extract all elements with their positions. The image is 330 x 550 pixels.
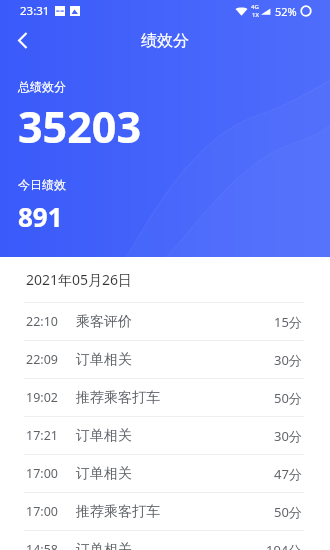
staticText: 50分 <box>274 389 302 407</box>
staticText: 订单相关 <box>76 541 132 550</box>
staticText: 17:00 <box>26 503 58 520</box>
staticText: 194分 <box>266 541 302 550</box>
staticText: 订单相关 <box>76 427 132 445</box>
staticText: 19:02 <box>26 389 58 406</box>
staticText: 47分 <box>274 465 302 483</box>
staticText: 17:21 <box>26 427 58 444</box>
staticText: 绩效分 <box>141 31 189 51</box>
staticText: 15分 <box>274 313 302 331</box>
button[interactable]: Back <box>0 22 44 58</box>
staticText: 23:31 <box>20 3 50 19</box>
staticText: 今日绩效 <box>18 177 66 192</box>
staticText: 22:10 <box>26 313 58 330</box>
staticText: 订单相关 <box>76 351 132 369</box>
staticText: 30分 <box>274 351 302 369</box>
staticText: 14:58 <box>26 541 58 550</box>
staticText: 22:09 <box>26 351 58 368</box>
staticText: 推荐乘客打车 <box>76 389 160 407</box>
staticText: 总绩效分 <box>18 79 66 94</box>
button[interactable]: 19:02 <box>0 379 330 416</box>
staticText: 50分 <box>274 503 302 521</box>
staticText: 订单相关 <box>76 465 132 483</box>
staticText: 1X <box>252 11 259 19</box>
staticText: 30分 <box>274 427 302 445</box>
staticText: 推荐乘客打车 <box>76 503 160 521</box>
button[interactable]: 22:09 <box>0 341 330 378</box>
staticText: 891 <box>18 199 63 234</box>
button[interactable]: 22:10 <box>0 303 330 340</box>
button[interactable]: 14:58 <box>0 531 330 550</box>
staticText: 2021年05月26日 <box>26 270 133 289</box>
button[interactable]: 17:21 <box>0 417 330 454</box>
staticText: 35203 <box>18 97 141 156</box>
staticText: 52% <box>275 4 297 19</box>
staticText: 乘客评价 <box>76 313 132 331</box>
staticText: 4G <box>251 3 259 11</box>
button[interactable]: 17:00 <box>0 455 330 492</box>
button[interactable]: 17:00 <box>0 493 330 530</box>
staticText: 17:00 <box>26 465 58 482</box>
